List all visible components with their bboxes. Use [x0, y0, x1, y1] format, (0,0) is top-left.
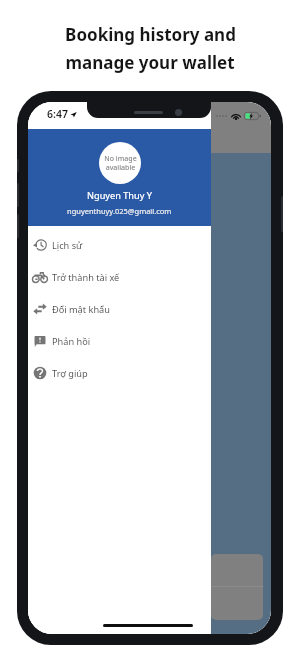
- other: Feedback: [33, 334, 47, 348]
- other: Change password: [33, 302, 47, 316]
- staticText: Lịch sử: [52, 239, 83, 252]
- button[interactable]: Feedback: [28, 325, 211, 357]
- staticText: 6:47: [47, 107, 68, 121]
- button[interactable]: History: [28, 229, 211, 261]
- staticText: Booking history and: [65, 23, 236, 46]
- staticText: nguyenthuyy.025@gmail.com: [67, 206, 172, 216]
- staticText: manage your wallet: [65, 51, 235, 74]
- button[interactable]: Help: [28, 357, 211, 389]
- button[interactable]: Become a driver: [28, 261, 211, 293]
- staticText: Trợ giúp: [52, 367, 88, 380]
- other: History: [33, 238, 47, 252]
- other: Become a driver: [33, 270, 47, 284]
- staticText: Trở thành tài xế: [52, 271, 120, 284]
- staticText: Nguyen Thuy Y: [87, 189, 152, 202]
- staticText: Đổi mật khẩu: [52, 303, 110, 316]
- staticText: No image available: [104, 154, 137, 172]
- staticText: Phản hồi: [52, 335, 91, 348]
- button[interactable]: Change password: [28, 293, 211, 325]
- other: Help: [33, 366, 47, 380]
